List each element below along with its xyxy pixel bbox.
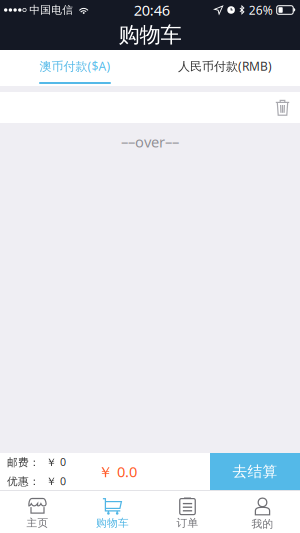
staticText: ––over–– [121, 132, 179, 151]
staticText: 订单 [176, 516, 198, 530]
button[interactable]: 购物车 [75, 491, 150, 532]
staticText: 人民币付款(RMB) [178, 58, 272, 74]
staticText: 邮费： ￥ 0 [7, 455, 66, 469]
staticText: 20:46 [134, 0, 170, 20]
staticText: 购物车 [118, 22, 181, 48]
button[interactable]: 去结算 [210, 453, 300, 490]
staticText: ￥ 0.0 [98, 462, 137, 481]
staticText: 购物车 [96, 516, 129, 530]
staticText: 中国电信 [29, 3, 73, 16]
button[interactable]: 我的 [225, 491, 300, 532]
staticText: 澳币付款($A) [39, 58, 110, 74]
staticText: 26% [249, 2, 273, 18]
staticText: 优惠： ￥ 0 [7, 474, 66, 488]
button[interactable]: 澳币付款($A) [0, 50, 150, 86]
button[interactable]: Delete [275, 99, 300, 116]
button[interactable]: 人民币付款(RMB) [150, 50, 300, 86]
staticText: 主页 [26, 516, 48, 530]
button[interactable]: 订单 [150, 491, 225, 532]
button[interactable]: 主页 [0, 491, 75, 532]
staticText: 去结算 [232, 462, 277, 480]
staticText: 我的 [251, 517, 273, 531]
